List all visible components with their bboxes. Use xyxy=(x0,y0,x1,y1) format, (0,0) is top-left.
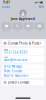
button[interactable]: Send Message xyxy=(2,64,44,69)
staticText: home xyxy=(4,56,8,58)
button[interactable]: home xyxy=(2,55,44,63)
button[interactable]: Linked Contacts xyxy=(2,80,44,85)
button[interactable]: Edit xyxy=(37,5,45,9)
staticText: Edit xyxy=(39,5,44,9)
button[interactable]: Lists xyxy=(1,5,10,9)
staticText: Lists xyxy=(4,5,9,9)
button[interactable]: video xyxy=(23,22,33,32)
staticText: Linked Contacts xyxy=(8,81,29,84)
staticText: jane@icloud.com xyxy=(4,58,27,62)
staticText: message xyxy=(3,30,10,32)
staticText: Send Message xyxy=(4,65,23,68)
staticText: 9:41 xyxy=(3,1,10,4)
button[interactable]: mobile xyxy=(2,48,44,55)
staticText: Share Contact xyxy=(4,69,22,73)
staticText: Contact Photo & Poster xyxy=(8,42,41,45)
staticText: mail xyxy=(38,30,40,32)
button[interactable]: call xyxy=(12,22,22,32)
button[interactable]: message xyxy=(2,22,11,32)
button[interactable]: Share Contact xyxy=(2,69,44,73)
button[interactable]: mail xyxy=(34,22,44,32)
staticText: Jane Appleseed xyxy=(11,17,35,21)
staticText: Add to Favourites xyxy=(4,74,28,77)
button[interactable]: Add to Favourites xyxy=(2,74,44,78)
staticText: mobile xyxy=(4,49,8,51)
button[interactable]: Contact Photo & Poster xyxy=(2,41,44,46)
staticText: video xyxy=(26,30,30,32)
staticText: call xyxy=(16,30,18,32)
staticText: (555) 564-8583 xyxy=(4,51,28,54)
